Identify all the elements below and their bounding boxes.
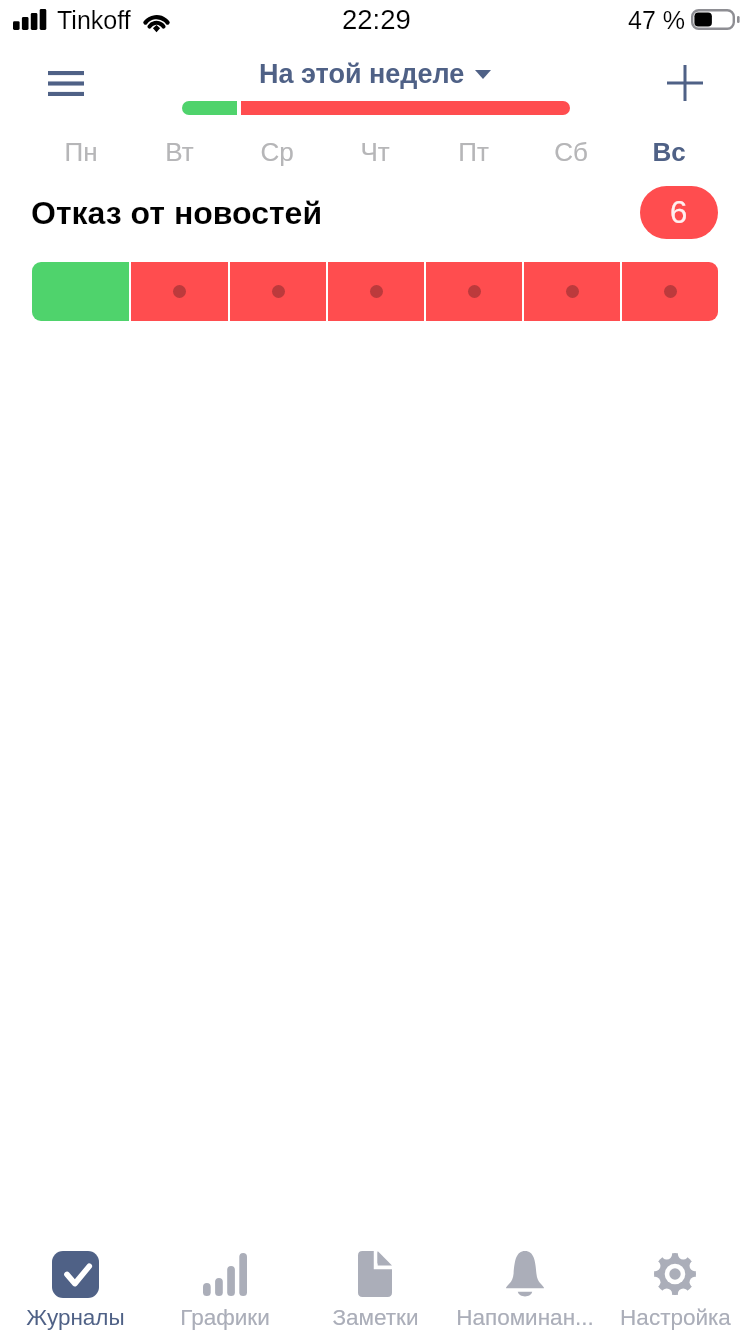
button[interactable] <box>524 262 620 321</box>
staticText: Вс <box>652 137 686 166</box>
staticText: Ср <box>260 137 294 166</box>
button[interactable]: Вс <box>620 131 718 171</box>
button[interactable]: Отказ от новостей <box>31 186 361 239</box>
button[interactable] <box>328 262 424 321</box>
staticText: 22:29 <box>342 4 411 35</box>
staticText: Настройка <box>620 1305 731 1330</box>
button[interactable]: Open navigation menu <box>26 53 106 113</box>
button[interactable] <box>131 262 228 321</box>
button[interactable]: Сб <box>522 131 620 171</box>
staticText: Пн <box>64 137 98 166</box>
button[interactable]: Напоминан... <box>450 1240 600 1334</box>
button[interactable]: На этой неделе <box>235 51 515 97</box>
button[interactable]: Ср <box>228 131 326 171</box>
staticText: На этой неделе <box>259 59 465 89</box>
button[interactable] <box>230 262 326 321</box>
button[interactable]: Вт <box>130 131 228 171</box>
staticText: Вт <box>165 137 194 166</box>
button[interactable]: Заметки <box>300 1240 450 1334</box>
staticText: 6 <box>670 195 688 230</box>
button[interactable]: Пн <box>32 131 130 171</box>
button[interactable] <box>426 262 522 321</box>
staticText: Сб <box>554 137 588 166</box>
button[interactable]: Журналы <box>0 1240 150 1334</box>
staticText: Напоминан... <box>456 1305 594 1330</box>
button[interactable]: Пт <box>424 131 522 171</box>
button[interactable]: Настройка <box>600 1240 750 1334</box>
staticText: 47 % <box>628 6 685 34</box>
staticText: Чт <box>360 137 390 166</box>
staticText: Графики <box>180 1305 270 1330</box>
staticText: Отказ от новостей <box>31 195 323 231</box>
button[interactable]: Add habit <box>645 53 725 113</box>
button[interactable] <box>32 262 129 321</box>
staticText: Заметки <box>332 1305 419 1330</box>
button[interactable] <box>622 262 718 321</box>
button[interactable]: Графики <box>150 1240 300 1334</box>
staticText: Tinkoff <box>57 6 131 34</box>
staticText: Журналы <box>26 1305 125 1330</box>
button[interactable]: Чт <box>326 131 424 171</box>
staticText: Пт <box>458 137 489 166</box>
button[interactable]: 6 <box>640 186 718 239</box>
